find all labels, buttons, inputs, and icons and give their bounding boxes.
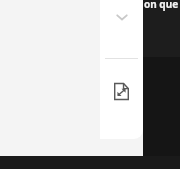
button[interactable]: Collapse — [109, 4, 134, 29]
staticText: on que — [144, 0, 179, 11]
button[interactable]: Fit page — [108, 78, 135, 105]
